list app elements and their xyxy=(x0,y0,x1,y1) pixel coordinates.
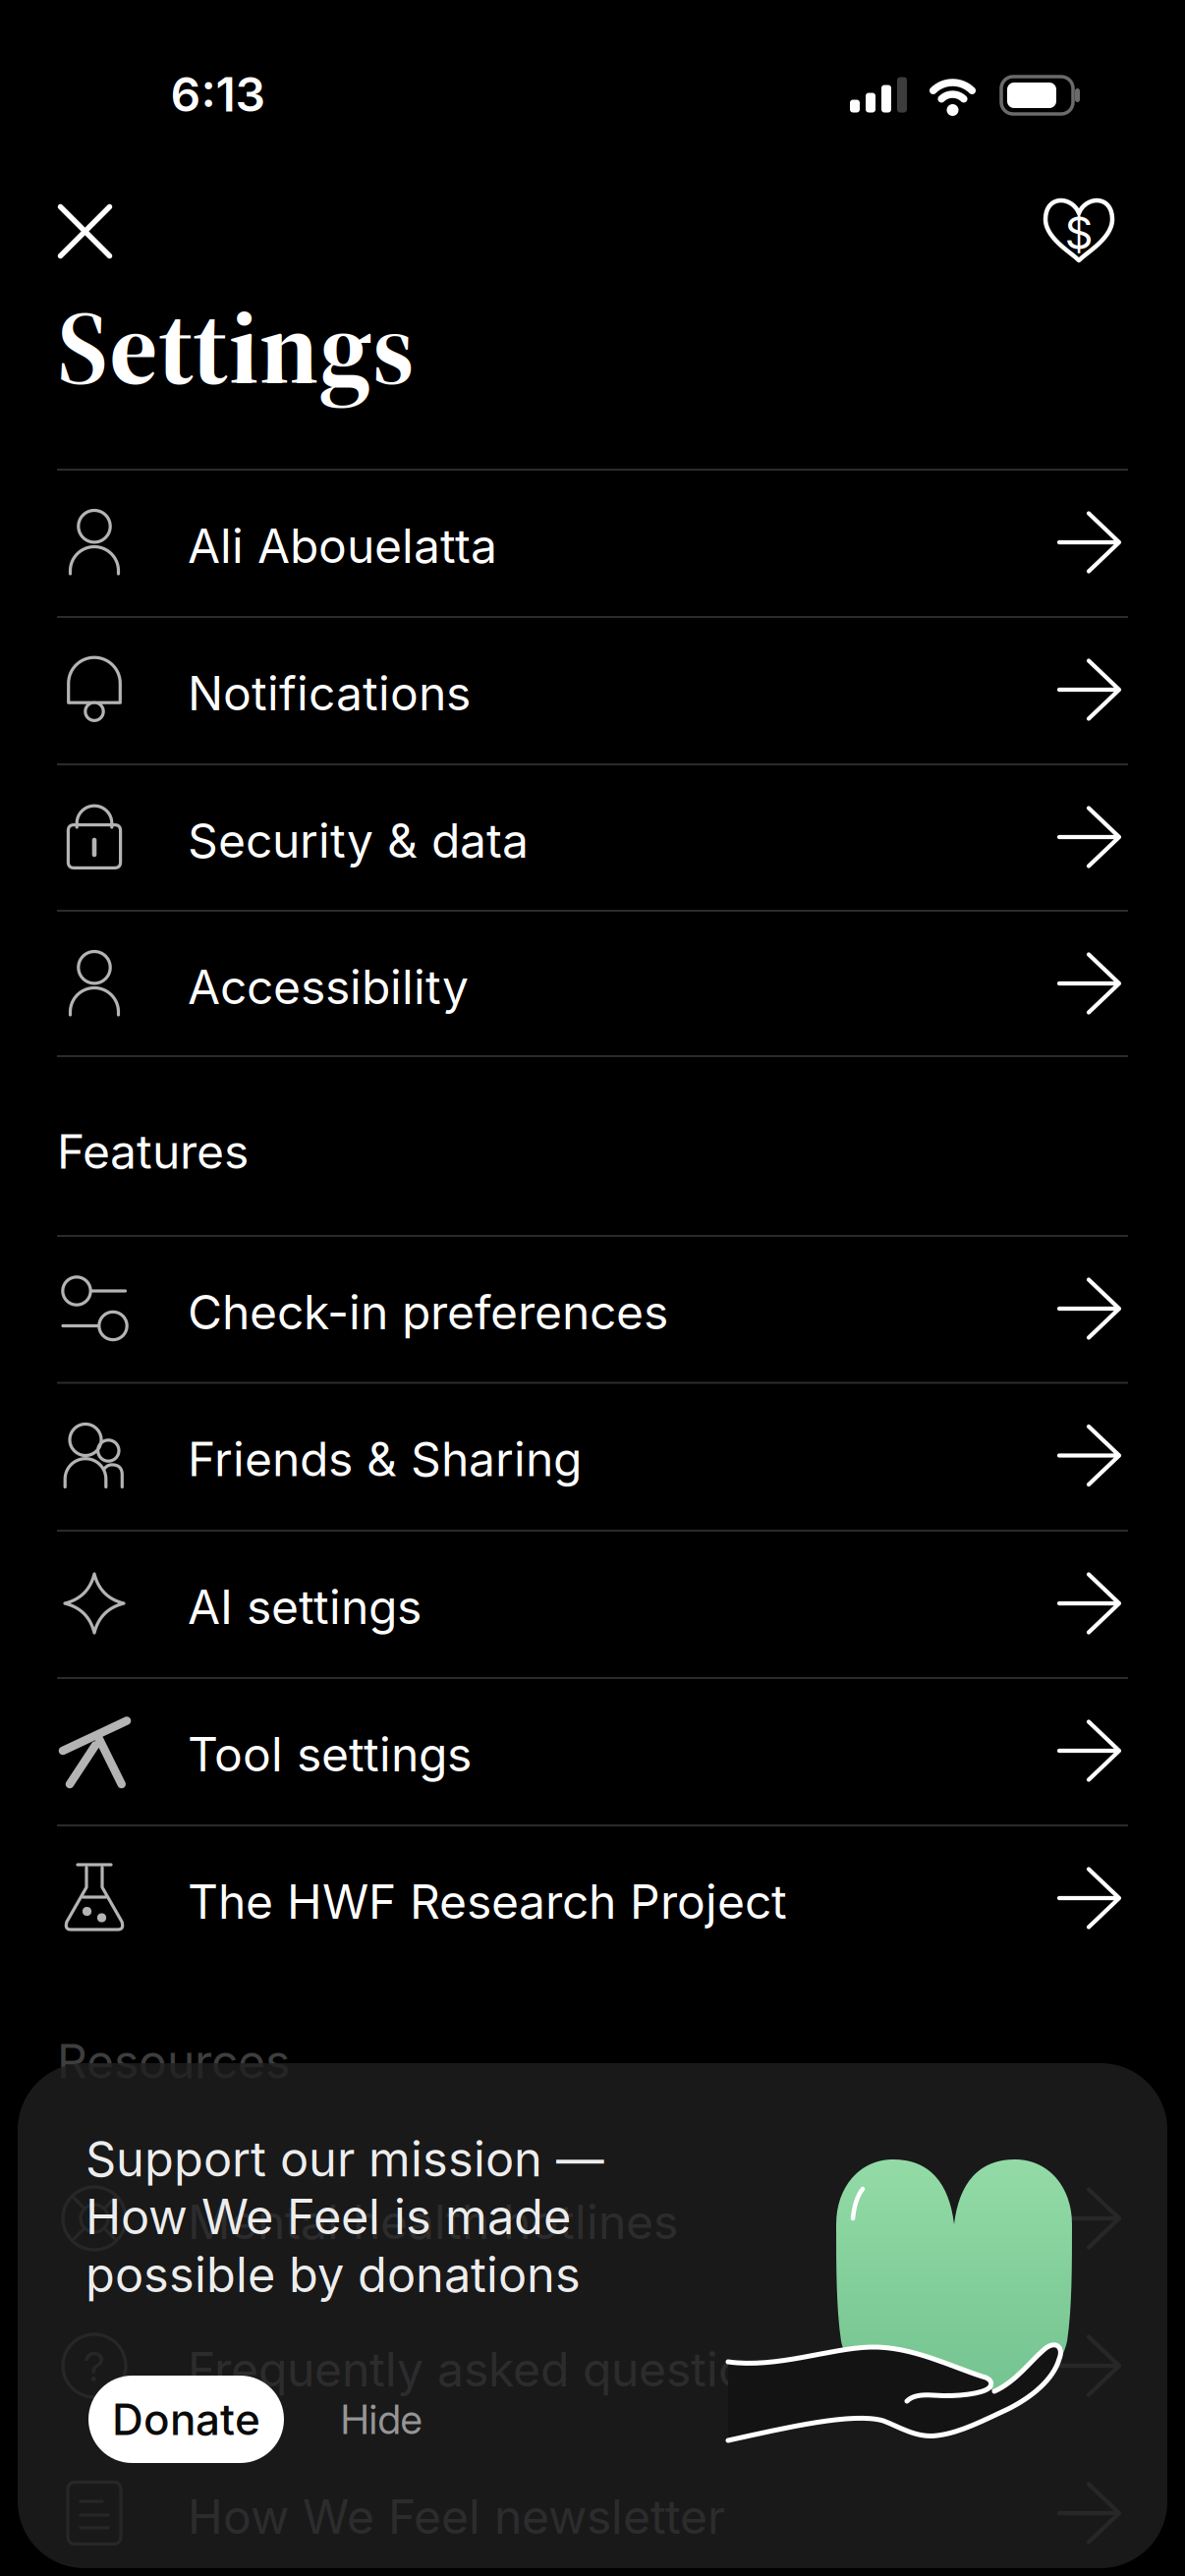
button[interactable]: Friends & Sharing xyxy=(57,1382,1128,1529)
staticText: Support our mission — How We Feel is mad… xyxy=(85,2130,604,2304)
staticText: Notifications xyxy=(188,665,471,722)
staticText: $ xyxy=(1065,206,1093,260)
staticText: Hide xyxy=(340,2395,422,2444)
staticText: Accessibility xyxy=(188,958,469,1015)
staticText: Check-in preferences xyxy=(188,1284,668,1341)
staticText: Friends & Sharing xyxy=(188,1430,582,1488)
staticText: How We Feel newsletter xyxy=(188,2488,725,2545)
button[interactable]: Mental health hotlines xyxy=(57,2145,1128,2292)
button[interactable]: Check-in preferences xyxy=(57,1235,1128,1382)
staticText: Frequently asked questions xyxy=(188,2341,799,2398)
staticText: The HWF Research Project xyxy=(188,1873,787,1930)
button[interactable]: Notifications xyxy=(57,616,1128,763)
button[interactable]: Ali Abouelatta xyxy=(57,469,1128,616)
staticText: Security & data xyxy=(188,812,529,869)
button[interactable]: Donate xyxy=(1044,199,1113,264)
button[interactable]: Close xyxy=(57,204,113,259)
staticText: Donate xyxy=(112,2393,260,2445)
staticText: Tool settings xyxy=(188,1726,472,1783)
button[interactable]: Accessibility xyxy=(57,910,1128,1057)
button[interactable]: Tool settings xyxy=(57,1677,1128,1824)
staticText: AI settings xyxy=(188,1578,422,1635)
button[interactable]: AI settings xyxy=(57,1530,1128,1677)
staticText: Mental health hotlines xyxy=(188,2193,678,2250)
button[interactable]: Security & data xyxy=(57,763,1128,911)
button[interactable]: ? xyxy=(57,2292,1128,2439)
staticText: 6:13 xyxy=(170,66,266,123)
staticText: Resources xyxy=(57,2033,290,2090)
staticText: Features xyxy=(57,1123,249,1180)
staticText: Ali Abouelatta xyxy=(188,517,497,574)
staticText: Settings xyxy=(57,274,415,418)
button[interactable]: How We Feel newsletter xyxy=(57,2439,1128,2576)
button[interactable]: Donate xyxy=(88,2376,284,2463)
button[interactable]: Hide xyxy=(322,2376,440,2463)
button[interactable]: The HWF Research Project xyxy=(57,1824,1128,1972)
staticText: ? xyxy=(84,2342,105,2391)
